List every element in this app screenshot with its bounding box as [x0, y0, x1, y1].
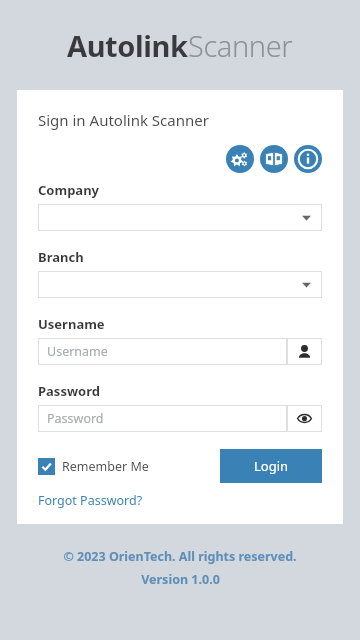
- staticText: © 2023 OrienTech. All rights reserved.: [63, 548, 297, 565]
- button[interactable]: Open dropdown: [38, 271, 322, 298]
- staticText: Sign in Autolink Scanner: [38, 110, 209, 130]
- staticText: Version 1.0.0: [141, 571, 220, 588]
- button[interactable]: Login: [220, 449, 322, 483]
- staticText: Password: [38, 382, 100, 400]
- button[interactable]: Show password: [287, 405, 322, 432]
- button[interactable]: Password: [38, 405, 287, 432]
- button[interactable]: Forgot Password?: [38, 492, 143, 509]
- staticText: Company: [38, 181, 100, 199]
- button[interactable]: Language: [260, 145, 288, 173]
- staticText: Scanner: [188, 26, 293, 65]
- staticText: Username: [47, 343, 108, 360]
- staticText: Remember Me: [62, 458, 149, 475]
- staticText: Autolink: [67, 26, 188, 65]
- button[interactable]: Information: [294, 145, 322, 173]
- staticText: Login: [254, 457, 289, 475]
- staticText: Username: [38, 315, 105, 333]
- button[interactable]: Settings: [226, 145, 254, 173]
- button[interactable]: User account: [287, 338, 322, 365]
- button[interactable]: Username: [38, 338, 287, 365]
- staticText: Branch: [38, 248, 84, 266]
- staticText: Password: [47, 410, 104, 427]
- staticText: Forgot Password?: [38, 492, 143, 509]
- button[interactable]: Remember Me: [38, 458, 149, 475]
- button[interactable]: Open dropdown: [38, 204, 322, 231]
